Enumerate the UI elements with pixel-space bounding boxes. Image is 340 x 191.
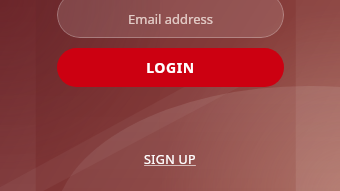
staticText: LOGIN — [146, 58, 195, 77]
button[interactable]: LOGIN — [57, 48, 284, 87]
staticText: SIGN UP — [144, 151, 196, 168]
button[interactable]: SIGN UP — [132, 148, 208, 170]
button[interactable]: Email address — [57, 0, 284, 38]
staticText: Email address — [128, 10, 213, 28]
